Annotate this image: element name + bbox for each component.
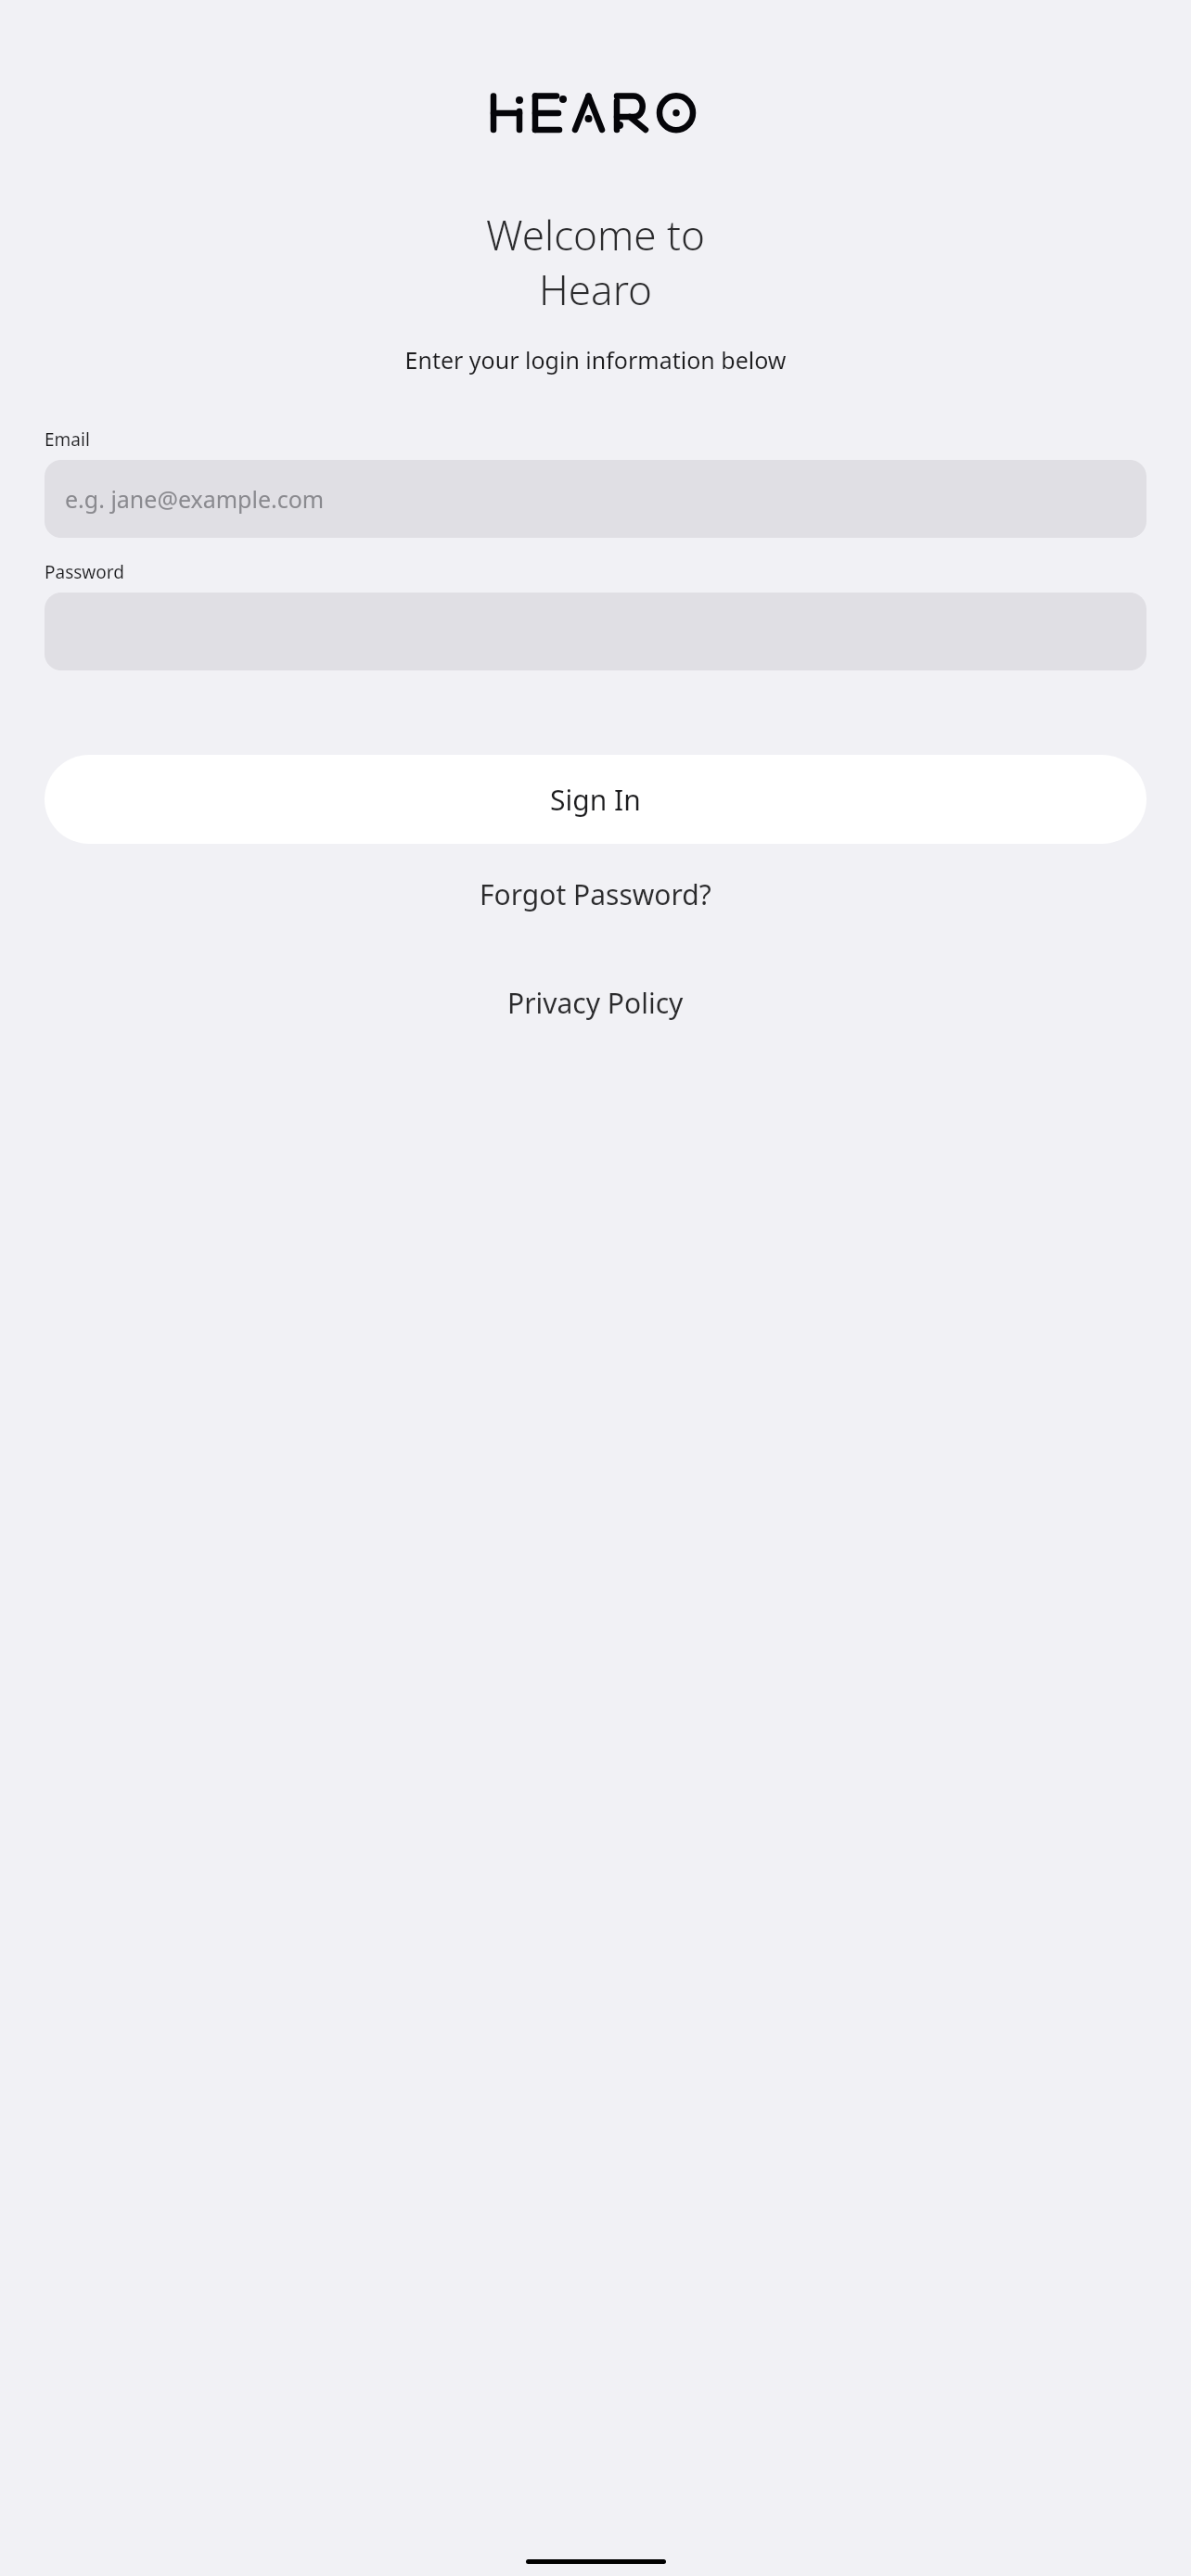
button[interactable]: Forgot Password? xyxy=(465,866,726,923)
button[interactable]: e.g. jane@example.com xyxy=(45,460,1146,538)
other: Hearo logo xyxy=(489,93,702,133)
staticText: Enter your login information below xyxy=(0,344,1191,376)
button[interactable]: Sign In xyxy=(45,755,1146,844)
staticText: Password xyxy=(45,560,124,584)
staticText: Sign In xyxy=(550,781,641,819)
button[interactable]: Privacy Policy xyxy=(493,975,698,1031)
staticText: e.g. jane@example.com xyxy=(65,483,325,515)
staticText: Email xyxy=(45,427,90,452)
staticText: Forgot Password? xyxy=(480,875,711,913)
staticText: Privacy Policy xyxy=(507,984,684,1022)
staticText: Welcome to Hearo xyxy=(0,207,1191,316)
